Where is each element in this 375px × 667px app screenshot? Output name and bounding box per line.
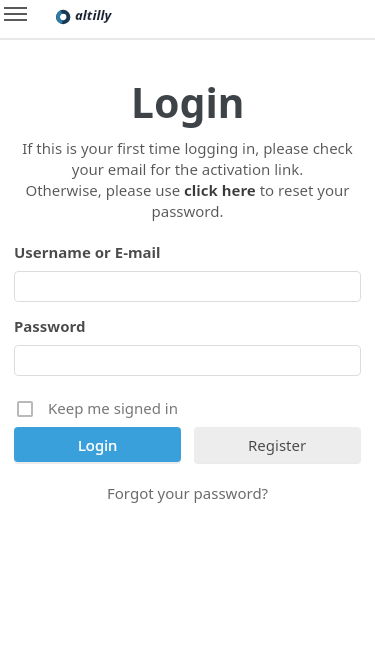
button[interactable]: Keep me signed in [17, 398, 178, 418]
button[interactable] [14, 345, 361, 376]
staticText: Login [78, 435, 118, 455]
button[interactable]: altilly [56, 6, 112, 30]
staticText: Password [14, 316, 86, 336]
staticText: If this is your first time logging in, p… [22, 138, 353, 222]
staticText: altilly [75, 6, 112, 24]
button[interactable] [4, 6, 32, 26]
button[interactable] [14, 271, 361, 302]
staticText: Login [131, 74, 245, 130]
button[interactable]: Login [14, 427, 181, 462]
button[interactable]: Register [194, 427, 361, 462]
button[interactable]: Forgot your password? [107, 483, 269, 503]
staticText: Register [248, 435, 307, 455]
staticText: Keep me signed in [48, 398, 178, 418]
staticText: Username or E-mail [14, 242, 161, 262]
